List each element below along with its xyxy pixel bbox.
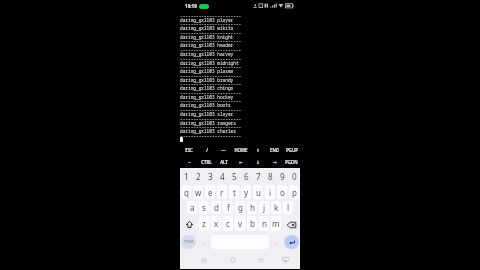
staticText: daring_gxl103 rangers <box>180 120 236 126</box>
button[interactable]: ↑ <box>249 144 266 156</box>
button[interactable]: 5 <box>228 168 240 184</box>
button[interactable]: f <box>223 201 233 214</box>
staticText: ----------------------- <box>180 133 242 139</box>
staticText: , <box>203 238 205 246</box>
staticText: h <box>250 202 255 213</box>
staticText: daring_gxl103 slayer <box>180 111 234 117</box>
staticText: daring_gxl103 charles <box>180 128 236 134</box>
button[interactable]: END <box>266 144 283 156</box>
button[interactable]: h <box>247 201 257 214</box>
button[interactable]: ALT <box>215 156 232 168</box>
staticText: 4 <box>220 171 225 182</box>
staticText: ----------------------- <box>180 73 242 79</box>
staticText: ----------------------- <box>180 47 242 53</box>
button[interactable]: p <box>289 185 299 199</box>
staticText: ← <box>239 160 243 165</box>
staticText: 10:19 <box>185 3 197 9</box>
staticText: e <box>208 187 213 198</box>
button[interactable]: v <box>235 216 245 231</box>
button[interactable]: w <box>193 185 203 199</box>
button[interactable]: , <box>198 233 209 250</box>
button[interactable]: Enter <box>284 235 299 249</box>
staticText: 5 <box>232 171 237 182</box>
button[interactable]: m <box>271 216 281 231</box>
button[interactable]: 9 <box>276 168 288 184</box>
button[interactable]: d <box>211 201 221 214</box>
button[interactable]: r <box>217 185 227 199</box>
staticText: y <box>244 187 249 198</box>
button[interactable]: Hide keyboard <box>276 251 294 269</box>
button[interactable]: o <box>277 185 287 199</box>
staticText: 8 <box>268 171 273 182</box>
staticText: b <box>250 218 255 229</box>
button[interactable]: ~ <box>180 156 198 168</box>
staticText: 7 <box>256 171 261 182</box>
button[interactable]: x <box>211 216 221 231</box>
button[interactable]: i <box>265 185 275 199</box>
staticText: z <box>202 218 206 229</box>
staticText: HOME <box>234 147 248 153</box>
button[interactable]: → <box>266 156 283 168</box>
button[interactable]: u <box>253 185 263 199</box>
staticText: 6 <box>244 171 249 182</box>
staticText: daring_gxl103 chingo <box>180 85 234 91</box>
staticText: — <box>221 147 226 153</box>
button[interactable]: 6 <box>240 168 252 184</box>
button[interactable]: 2 <box>192 168 204 184</box>
button[interactable]: PGDN <box>283 156 300 168</box>
staticText: daring_gxl103 wikita <box>180 25 234 31</box>
button[interactable]: q <box>181 185 191 199</box>
button[interactable]: — <box>215 144 232 156</box>
button[interactable]: n <box>259 216 269 231</box>
staticText: ----------------------- <box>180 13 242 19</box>
button[interactable]: j <box>259 201 269 214</box>
button[interactable]: k <box>271 201 281 214</box>
button[interactable]: 1 <box>180 168 192 184</box>
button[interactable]: Shift <box>181 216 197 231</box>
button[interactable]: Recents <box>195 251 213 269</box>
staticText: ----------------------- <box>180 30 242 36</box>
button[interactable]: l <box>283 201 293 214</box>
button[interactable]: 0 <box>288 168 300 184</box>
staticText: k <box>274 202 279 213</box>
button[interactable]: CTRL <box>198 156 215 168</box>
button[interactable]: b <box>247 216 257 231</box>
staticText: ↓ <box>256 160 260 165</box>
button[interactable]: PGUP <box>283 144 300 156</box>
button[interactable]: ?123 <box>181 235 196 249</box>
staticText: s <box>202 202 206 213</box>
staticText: n <box>262 218 267 229</box>
button[interactable]: a <box>187 201 197 214</box>
staticText: daring_gxl103 boots <box>180 102 231 108</box>
button[interactable]: Backspace <box>283 216 299 231</box>
button[interactable]: z <box>199 216 209 231</box>
button[interactable]: e <box>205 185 215 199</box>
button[interactable]: s <box>199 201 209 214</box>
button[interactable]: 3 <box>204 168 216 184</box>
button[interactable]: c <box>223 216 233 231</box>
button[interactable]: . <box>271 233 282 250</box>
button[interactable]: Back <box>252 251 270 269</box>
staticText: daring_gxl103 knight <box>180 34 234 40</box>
button[interactable]: Home <box>224 251 242 269</box>
staticText: ----------------------- <box>180 124 242 130</box>
button[interactable]: y <box>241 185 251 199</box>
staticText: ?123 <box>184 239 194 245</box>
staticText: o <box>280 187 285 198</box>
staticText: u <box>256 187 261 198</box>
button[interactable]: ← <box>232 156 249 168</box>
button[interactable]: 8 <box>264 168 276 184</box>
button[interactable]: ESC <box>180 144 198 156</box>
button[interactable]: 4 <box>216 168 228 184</box>
button[interactable]: / <box>198 144 215 156</box>
button[interactable]: g <box>235 201 245 214</box>
staticText: v <box>238 218 243 229</box>
button[interactable]: HOME <box>232 144 249 156</box>
button[interactable]: 7 <box>252 168 264 184</box>
staticText: ----------------------- <box>180 116 242 122</box>
staticText: i <box>269 187 272 198</box>
staticText: p <box>292 187 297 198</box>
button[interactable]: ↓ <box>249 156 266 168</box>
button[interactable]: t <box>229 185 239 199</box>
